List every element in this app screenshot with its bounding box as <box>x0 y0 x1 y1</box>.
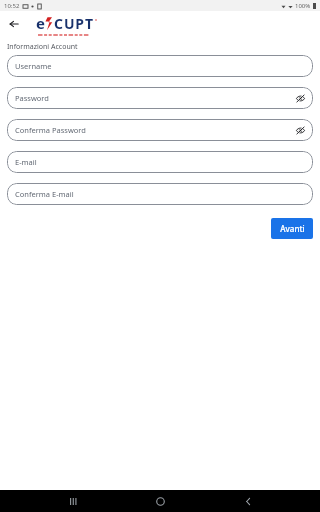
staticText: Informazioni Account <box>7 42 78 52</box>
staticText: E-mail <box>15 157 37 167</box>
button[interactable]: Toggle password visibility <box>293 91 307 105</box>
button[interactable]: Home <box>145 490 175 512</box>
staticText: 100% <box>295 2 311 10</box>
button[interactable]: Username <box>7 55 313 77</box>
button[interactable]: Conferma E-mail <box>7 183 313 205</box>
button[interactable]: Back <box>4 14 24 34</box>
button[interactable]: Toggle password visibility <box>293 123 307 137</box>
button[interactable]: Back <box>233 490 263 512</box>
button[interactable]: Conferma Password <box>7 119 313 141</box>
staticText: Username <box>15 61 52 71</box>
button[interactable]: Avanti <box>271 218 313 239</box>
staticText: Avanti <box>280 223 305 234</box>
button[interactable]: Password <box>7 87 313 109</box>
button[interactable]: Recent apps <box>58 490 88 512</box>
staticText: CUPT <box>54 14 94 33</box>
button[interactable]: E-mail <box>7 151 313 173</box>
staticText: Conferma E-mail <box>15 189 74 199</box>
staticText: Conferma Password <box>15 125 86 135</box>
staticText: Password <box>15 93 49 103</box>
staticText: 10:52 <box>4 2 20 10</box>
staticText: e <box>36 13 45 33</box>
